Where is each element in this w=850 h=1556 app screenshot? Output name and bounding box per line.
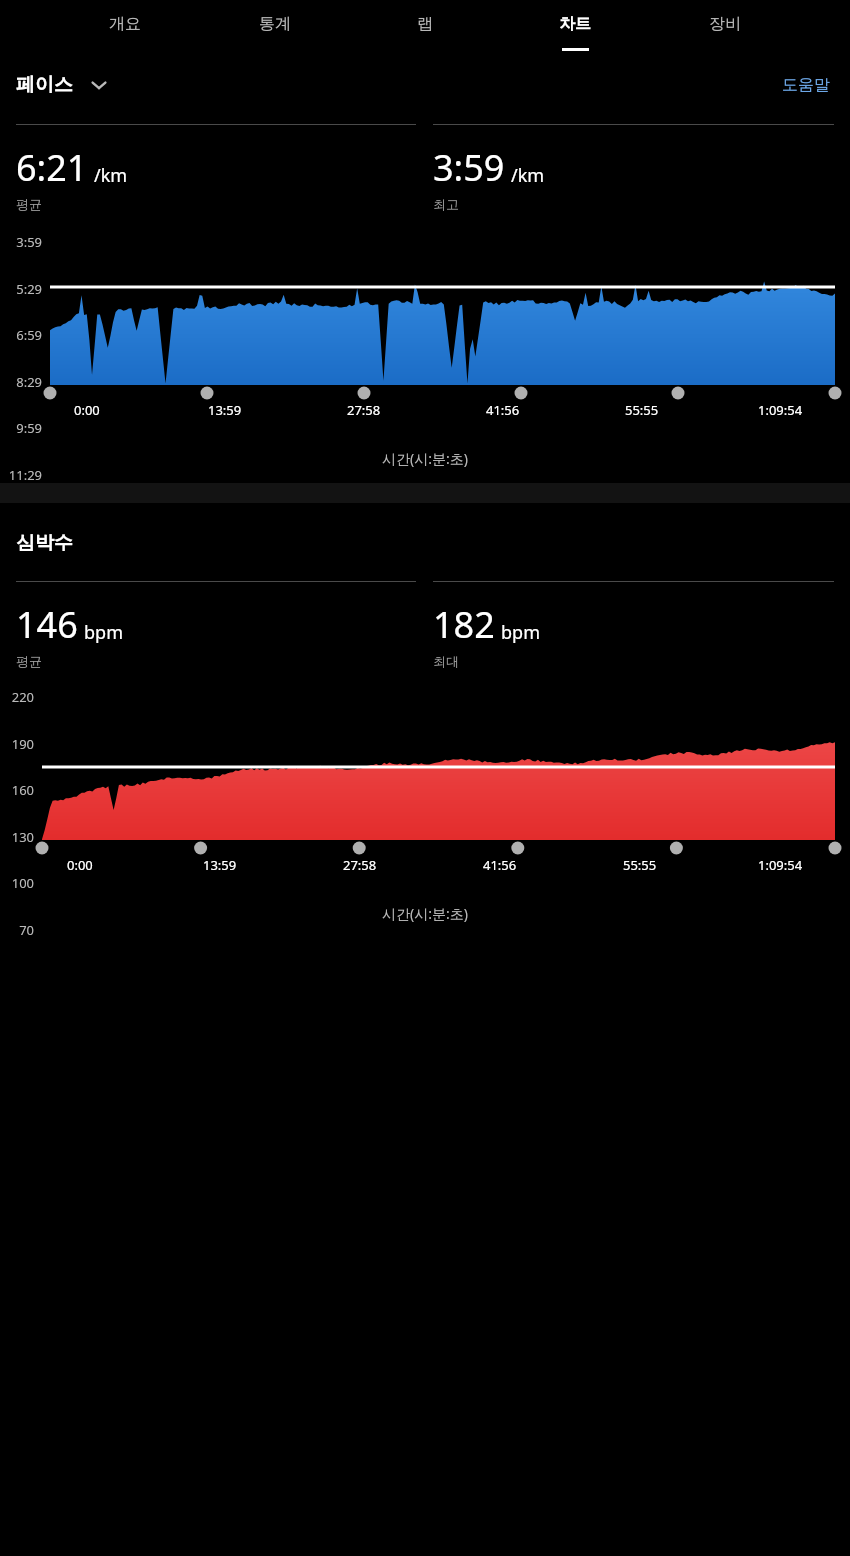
staticText: 130 [0, 828, 34, 846]
staticText: 3:59 [0, 233, 42, 251]
staticText: 3:59 [433, 143, 505, 192]
button[interactable]: 장비 [650, 0, 800, 48]
staticText: 1:09:54 [758, 856, 803, 874]
staticText: 0:00 [74, 401, 100, 419]
staticText: 시간(시:분:초) [382, 449, 468, 468]
button[interactable]: 개요 [50, 0, 200, 48]
staticText: 100 [0, 874, 34, 892]
button[interactable]: 차트 [500, 0, 650, 48]
staticText: 13:59 [203, 856, 237, 874]
button[interactable]: 도움말 [778, 71, 834, 99]
staticText: 13:59 [208, 401, 242, 419]
staticText: 평균 [16, 653, 42, 669]
button[interactable]: 페이스 [16, 73, 109, 97]
staticText: 190 [0, 735, 34, 753]
staticText: 11:29 [0, 466, 42, 484]
button[interactable]: 통계 [200, 0, 350, 48]
staticText: 페이스 [16, 73, 73, 97]
staticText: 최대 [433, 653, 459, 669]
staticText: bpm [501, 620, 540, 645]
staticText: 시간(시:분:초) [382, 904, 468, 923]
staticText: 182 [433, 600, 495, 649]
staticText: 41:56 [483, 856, 517, 874]
other: Change metric [89, 75, 109, 95]
staticText: 160 [0, 781, 34, 799]
staticText: 5:29 [0, 280, 42, 298]
staticText: 146 [16, 600, 78, 649]
staticText: 55:55 [625, 401, 659, 419]
staticText: 27:58 [347, 401, 381, 419]
button[interactable]: 랩 [350, 0, 500, 48]
staticText: /km [511, 163, 545, 188]
staticText: 220 [0, 688, 34, 706]
staticText: 차트 [559, 14, 591, 34]
staticText: 41:56 [486, 401, 520, 419]
staticText: 1:09:54 [758, 401, 803, 419]
staticText: 55:55 [623, 856, 657, 874]
staticText: 8:29 [0, 373, 42, 391]
staticText: 심박수 [16, 531, 73, 555]
staticText: 70 [0, 921, 34, 939]
staticText: 평균 [16, 196, 42, 212]
staticText: /km [94, 163, 128, 188]
staticText: 최고 [433, 196, 459, 212]
staticText: bpm [84, 620, 123, 645]
staticText: 랩 [417, 14, 433, 34]
staticText: 장비 [709, 14, 741, 34]
staticText: 6:21 [16, 143, 88, 192]
staticText: 6:59 [0, 326, 42, 344]
staticText: 도움말 [782, 75, 830, 95]
staticText: 개요 [109, 14, 141, 34]
staticText: 통계 [259, 14, 291, 34]
staticText: 9:59 [0, 419, 42, 437]
staticText: 0:00 [67, 856, 93, 874]
staticText: 27:58 [343, 856, 377, 874]
